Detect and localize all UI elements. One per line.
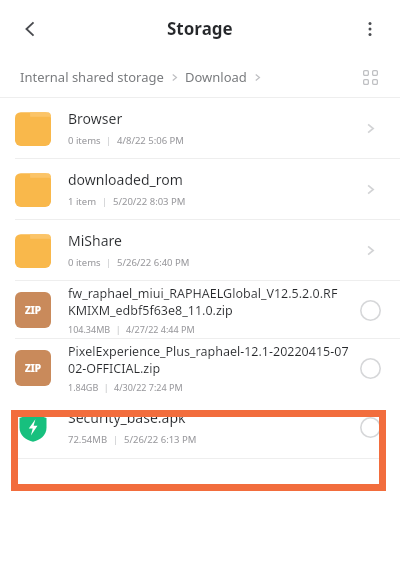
button[interactable]: Open folder [355,235,385,265]
staticText: MiShare [68,231,122,250]
staticText: 5/26/22 6:40 PM [117,256,190,269]
staticText: 104.34MB [68,323,111,335]
staticText: | [111,323,126,335]
staticText: ZIP [25,361,41,375]
button[interactable]: Browser [0,98,400,158]
staticText: Storage [167,17,233,40]
button[interactable]: Select file [355,412,385,442]
button[interactable]: ZIP [0,281,400,338]
button[interactable]: Grid view [352,59,388,95]
staticText: Internal shared storage [20,68,164,86]
staticText: 1.84GB [68,381,99,393]
staticText: 4/8/22 5:06 PM [117,134,184,147]
staticText: | [99,381,114,393]
staticText: 4/30/22 7:24 PM [114,381,183,393]
staticText: 0 items [68,134,101,147]
staticText: KMIXM_edbf5f63e8_11.0.zip [68,302,233,319]
staticText: 5/20/22 8:03 PM [113,195,186,208]
staticText: 1 item [68,195,97,208]
button[interactable]: Back [10,9,50,49]
button[interactable]: ZIP [0,339,400,396]
button[interactable]: Security_base.apk [0,396,400,458]
staticText: | [101,256,117,269]
staticText: Security_base.apk [68,408,186,427]
staticText: Download [185,68,247,86]
staticText: fw_raphael_miui_RAPHAELGlobal_V12.5.2.0.… [68,285,338,302]
staticText: 4/27/22 4:44 PM [126,323,195,335]
button[interactable]: MiShare [0,220,400,280]
staticText: | [108,433,124,446]
staticText: PixelExperience_Plus_raphael-12.1-202204… [68,343,349,360]
staticText: ZIP [25,303,41,317]
staticText: downloaded_rom [68,170,183,189]
button[interactable]: downloaded_rom [0,159,400,219]
staticText: 0 items [68,256,101,269]
button[interactable]: Open folder [355,174,385,204]
staticText: | [97,195,113,208]
button[interactable]: Select file [355,295,385,325]
staticText: 02-OFFICIAL.zip [68,360,161,377]
button[interactable]: Select file [355,353,385,383]
button[interactable]: Open folder [355,113,385,143]
staticText: 5/26/22 6:13 PM [124,433,197,446]
staticText: | [101,134,117,147]
button[interactable]: Internal shared storage [20,68,263,86]
staticText: Browser [68,109,123,128]
button[interactable]: More options [350,9,390,49]
staticText: 72.54MB [68,433,108,446]
